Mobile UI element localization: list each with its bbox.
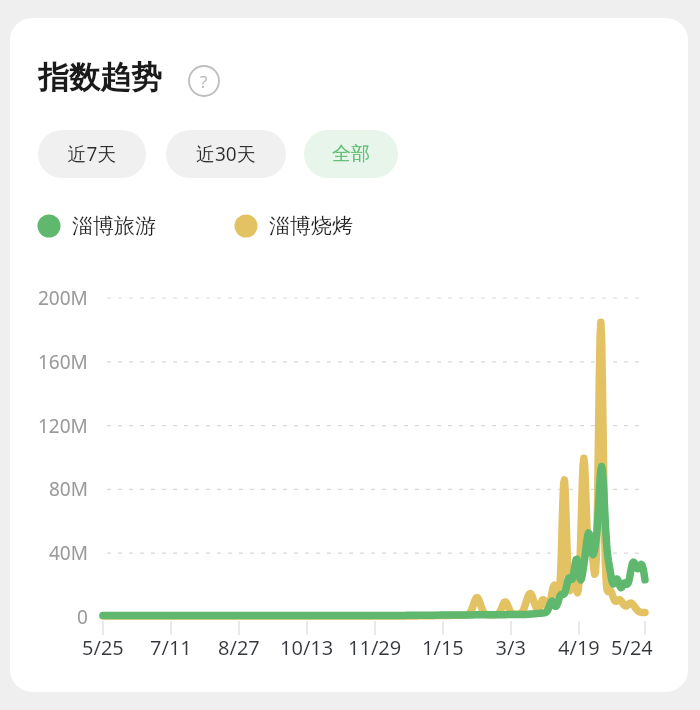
button[interactable] [38, 130, 146, 178]
button[interactable]: Help about index trend [188, 65, 220, 97]
button[interactable] [166, 130, 286, 178]
button[interactable] [304, 130, 398, 178]
